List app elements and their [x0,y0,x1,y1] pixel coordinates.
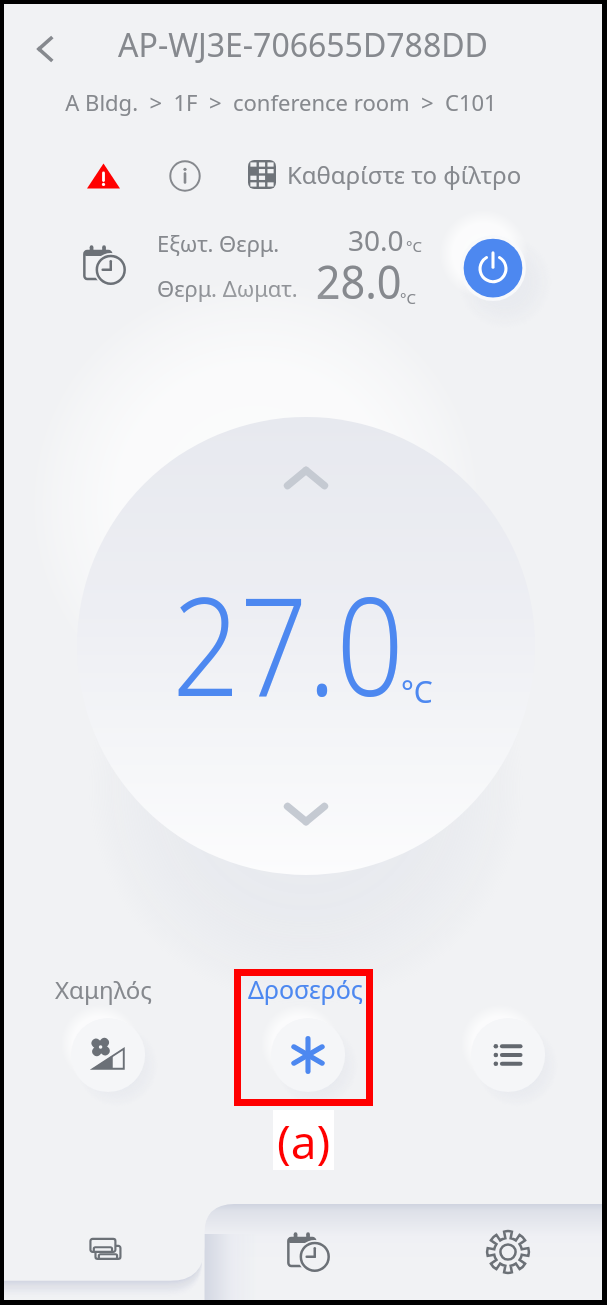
staticText: °C [400,288,416,308]
staticText: A Bldg. > 1F > conference room > C101 [0,87,580,117]
staticText: 27.0 [172,551,405,736]
staticText: °C [401,671,433,712]
staticText: Καθαρίστε το φίλτρο [287,158,522,191]
staticText: Εξωτ. Θερμ. [157,228,280,258]
staticText: 28.0 [316,250,402,313]
button[interactable]: Power [446,221,540,315]
button[interactable]: Cool mode [267,1014,349,1096]
button[interactable]: Schedule [77,237,133,293]
button[interactable]: Καθαρίστε το φίλτρο [248,152,522,197]
staticText: Θερμ. Δωματ. [157,273,298,303]
button[interactable]: Warning [75,150,131,202]
staticText: 30.0 [348,221,404,259]
staticText: AP-WJ3E-706655D788DD [4,23,602,67]
staticText: (a) [277,1110,331,1170]
staticText: Δροσερός [248,972,364,1006]
button[interactable]: Information [157,150,213,202]
button[interactable]: Back [16,20,74,78]
button[interactable]: Temperature dial [77,417,535,875]
button[interactable]: Settings [409,1204,606,1300]
staticText: Χαμηλός [55,973,153,1006]
button[interactable]: Device [4,1204,209,1292]
button[interactable]: Fan speed [67,1014,149,1096]
staticText: °C [406,236,422,256]
button[interactable]: More options [467,1014,549,1096]
button[interactable]: Schedule [209,1204,409,1300]
